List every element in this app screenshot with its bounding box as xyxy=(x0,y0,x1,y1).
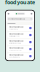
staticText: Progresso · 1 cup xyxy=(8,49,21,51)
staticText: Campbell's · 1 can xyxy=(8,35,19,37)
button[interactable]: Chicken noodle soup xyxy=(6,32,34,39)
button[interactable]: Chicken Noodle Soup xyxy=(6,25,34,32)
staticText: Chicken noodle soup xyxy=(10,18,25,20)
staticText: food you ate xyxy=(5,0,35,6)
staticText: Homemade · 1 bowl xyxy=(8,42,20,44)
button[interactable]: Back xyxy=(7,12,10,15)
staticText: Chicken Noodle Soup xyxy=(8,54,23,56)
staticText: Chicken Noodle Soup xyxy=(8,40,23,42)
button[interactable]: Menu xyxy=(30,12,33,15)
button[interactable]: Chicken noodle soup xyxy=(6,16,34,22)
staticText: Chicken noodle soup xyxy=(8,47,23,49)
button[interactable]: Chicken Noodle Soup xyxy=(6,39,34,46)
staticText: 1 serving · 90 cal xyxy=(8,56,19,58)
staticText: Chicken noodle soup xyxy=(8,33,23,35)
staticText: 1 cup · 120 cal xyxy=(8,28,17,30)
button[interactable]: Chicken Noodle Soup xyxy=(6,53,34,60)
button[interactable]: Chicken noodle soup xyxy=(6,46,34,53)
staticText: Chicken Noodle Soup xyxy=(8,26,23,28)
